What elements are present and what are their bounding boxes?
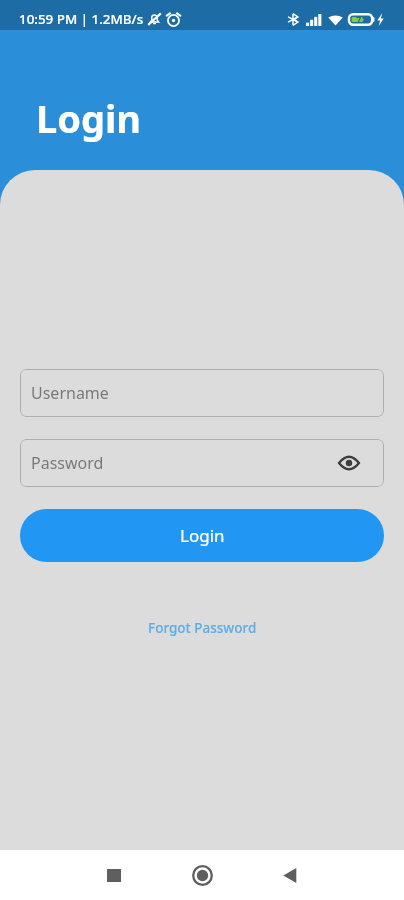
button[interactable]: Show password: [335, 449, 363, 477]
button[interactable]: Recent apps: [92, 853, 136, 897]
staticText: Username: [31, 382, 109, 404]
button[interactable]: Forgot Password: [142, 616, 263, 640]
button[interactable]: Username: [20, 369, 384, 417]
staticText: 10:59 PM | 1.2MB/s: [19, 10, 144, 28]
button[interactable]: Password: [20, 439, 384, 487]
staticText: 72: [356, 13, 367, 26]
staticText: Login: [180, 524, 225, 547]
staticText: Password: [31, 452, 104, 474]
button[interactable]: Login: [20, 509, 384, 562]
button[interactable]: Home: [180, 853, 224, 897]
staticText: Login: [36, 92, 142, 144]
button[interactable]: Back: [268, 853, 312, 897]
